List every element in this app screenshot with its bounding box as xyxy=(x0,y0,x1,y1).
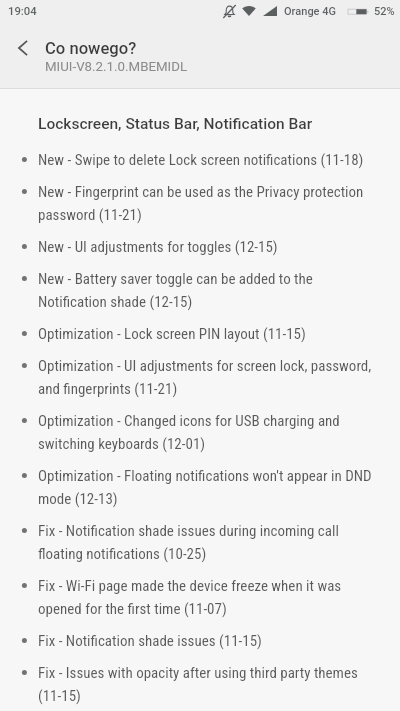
staticText: Optimization - Lock screen PIN layout (1… xyxy=(38,321,306,344)
staticText: 52% xyxy=(374,5,395,18)
button[interactable]: Optimization - Floating notifications wo… xyxy=(0,463,376,509)
staticText: Fix - Notification shade issues (11-15) xyxy=(38,628,262,651)
button[interactable]: New - Battery saver toggle can be added … xyxy=(0,266,376,312)
button[interactable]: Optimization - Lock screen PIN layout (1… xyxy=(0,321,376,344)
staticText: New - Swipe to delete Lock screen notifi… xyxy=(38,147,364,170)
button[interactable]: Optimization - Changed icons for USB cha… xyxy=(0,408,376,454)
button[interactable]: New - Swipe to delete Lock screen notifi… xyxy=(0,147,376,170)
button[interactable]: New - Fingerprint can be used as the Pri… xyxy=(0,179,376,225)
button[interactable]: Optimization - UI adjustments for screen… xyxy=(0,353,376,399)
staticText: Lockscreen, Status Bar, Notification Bar xyxy=(38,115,313,133)
staticText: Fix - Issues with opacity after using th… xyxy=(38,660,376,706)
staticText: Co nowego? xyxy=(45,39,137,58)
staticText: Optimization - UI adjustments for screen… xyxy=(38,353,376,399)
staticText: Fix - Wi-Fi page made the device freeze … xyxy=(38,573,376,619)
staticText: Fix - Notification shade issues during i… xyxy=(38,518,376,564)
staticText: Optimization - Floating notifications wo… xyxy=(38,463,376,509)
button[interactable]: Fix - Notification shade issues (11-15) xyxy=(0,628,376,651)
button[interactable]: Fix - Issues with opacity after using th… xyxy=(0,660,376,706)
staticText: Orange 4G xyxy=(284,5,336,18)
staticText: New - Battery saver toggle can be added … xyxy=(38,266,376,312)
button[interactable]: New - UI adjustments for toggles (12-15) xyxy=(0,234,376,257)
staticText: 19:04 xyxy=(8,5,37,18)
button[interactable]: Fix - Wi-Fi page made the device freeze … xyxy=(0,573,376,619)
button[interactable]: Fix - Notification shade issues during i… xyxy=(0,518,376,564)
staticText: New - UI adjustments for toggles (12-15) xyxy=(38,234,278,257)
staticText: MIUI-V8.2.1.0.MBEMIDL xyxy=(45,58,188,75)
staticText: New - Fingerprint can be used as the Pri… xyxy=(38,179,376,225)
button[interactable]: Back xyxy=(1,26,45,70)
staticText: Optimization - Changed icons for USB cha… xyxy=(38,408,376,454)
